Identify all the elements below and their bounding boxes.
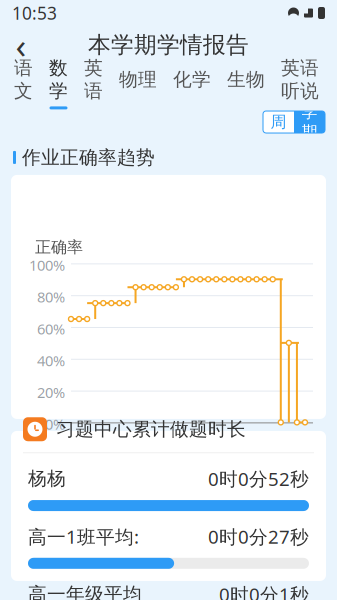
staticText: 10-04 [243, 427, 280, 447]
button[interactable]: 英语听说 [273, 64, 327, 102]
button[interactable]: 返回 [0, 26, 42, 64]
button[interactable]: 数学 [41, 64, 76, 102]
staticText: 周 [270, 112, 286, 132]
staticText: 英语 [84, 57, 103, 102]
staticText: 09-13 [105, 427, 142, 447]
staticText: 40% [37, 351, 65, 370]
staticText: 习题中心累计做题时长 [56, 418, 246, 441]
staticText: 高一年级平均 [28, 583, 142, 600]
staticText: 0时0分52秒 [208, 466, 309, 491]
button[interactable]: 英语 [76, 64, 111, 102]
staticText: 数学 [49, 57, 68, 102]
staticText: 作业正确率趋势 [22, 146, 155, 169]
staticText: 0时0分1秒 [219, 582, 309, 600]
button[interactable]: 物理 [111, 64, 165, 102]
staticText: 杨杨 [28, 467, 66, 490]
staticText: 正确率 [35, 237, 83, 257]
staticText: 生物 [227, 68, 265, 91]
staticText: 物理 [119, 68, 157, 91]
staticText: 本学期学情报告 [88, 31, 249, 59]
staticText: 10-26 [277, 427, 314, 447]
staticText: 60% [37, 319, 65, 338]
staticText: 09-06 [59, 427, 96, 447]
staticText: 学期 [301, 102, 317, 142]
button[interactable]: 化学 [165, 64, 219, 102]
staticText: ‹ [15, 22, 26, 68]
staticText: 语文 [14, 57, 33, 102]
button[interactable]: 学期 [294, 111, 325, 133]
staticText: 化学 [173, 68, 211, 91]
button[interactable]: 生物 [219, 64, 273, 102]
staticText: 100% [29, 255, 65, 275]
staticText: 0% [45, 414, 65, 434]
staticText: 80% [37, 287, 65, 307]
staticText: 09-20 [151, 427, 188, 447]
staticText: 20% [37, 383, 65, 402]
staticText: 09-27 [197, 427, 234, 447]
staticText: 10:53 [12, 1, 57, 24]
staticText: 高一1班平均: [28, 524, 139, 549]
staticText: 0时0分27秒 [208, 524, 309, 549]
staticText: 英语听说 [281, 57, 319, 102]
button[interactable]: 周 [263, 111, 294, 133]
button[interactable]: 语文 [6, 64, 41, 102]
